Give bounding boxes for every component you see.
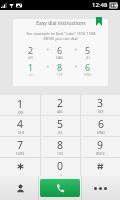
button[interactable]: 1 <box>0 95 40 115</box>
staticText: + <box>74 47 78 54</box>
staticText: WXYZ <box>96 152 105 156</box>
staticText: TUV <box>57 73 63 77</box>
staticText: , <box>20 170 21 174</box>
button[interactable]: 5 <box>41 116 80 136</box>
staticText: 7 <box>17 138 24 152</box>
button[interactable]: 3 <box>81 95 120 115</box>
button[interactable]: 7 <box>0 137 40 157</box>
staticText: + <box>74 64 78 71</box>
button[interactable]: More options <box>80 176 120 200</box>
staticText: 6 <box>98 117 105 131</box>
staticText: TUV <box>57 152 64 156</box>
staticText: + <box>46 47 50 54</box>
staticText: + <box>60 173 62 177</box>
button[interactable]: 0 <box>41 158 80 178</box>
staticText: DEF <box>98 110 104 114</box>
button[interactable]: 6 <box>81 116 120 136</box>
staticText: 12:48 <box>92 1 108 9</box>
staticText: 2 <box>57 96 64 110</box>
staticText: 8 <box>57 138 64 152</box>
staticText: ; <box>100 170 101 174</box>
staticText: 8 <box>57 61 63 73</box>
button[interactable]: ; <box>81 158 120 178</box>
staticText: + <box>46 64 50 71</box>
staticText: 5 <box>57 117 64 131</box>
staticText: MNO <box>84 73 92 77</box>
staticText: oo <box>29 73 33 77</box>
staticText: 4 <box>17 117 24 131</box>
staticText: 9 <box>97 138 104 152</box>
staticText: For example to find "Luke" (516 1558 689… <box>26 31 96 41</box>
staticText: Easy dial instructions <box>36 20 86 27</box>
button[interactable]: 8 <box>41 137 80 157</box>
button[interactable]: 9 <box>81 137 120 157</box>
button[interactable]: 4 <box>0 116 40 136</box>
staticText: GHI <box>18 131 24 135</box>
staticText: JKL <box>86 56 91 60</box>
staticText: 6 <box>57 44 63 56</box>
staticText: 2 <box>28 44 34 56</box>
button[interactable]: Call <box>40 179 80 197</box>
staticText: 1 <box>17 97 24 111</box>
staticText: ABC <box>57 110 64 114</box>
staticText: 0 <box>57 159 64 173</box>
staticText: 6 <box>85 61 91 73</box>
button[interactable]: 2 <box>41 95 80 115</box>
staticText: PQRS <box>16 152 25 156</box>
staticText: JKL <box>58 131 63 135</box>
staticText: or <box>0 55 120 60</box>
staticText: 5 <box>85 44 91 56</box>
staticText: 1 <box>28 61 34 73</box>
staticText: MNO <box>97 131 105 135</box>
staticText: 3 <box>97 96 104 110</box>
staticText: ABC <box>28 56 34 60</box>
button[interactable]: , <box>0 158 40 178</box>
staticText: MNO <box>56 56 64 60</box>
button[interactable]: Contacts <box>0 176 40 200</box>
